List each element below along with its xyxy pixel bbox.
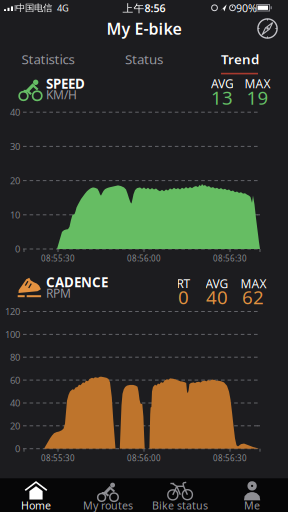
staticText: Status <box>125 50 163 68</box>
staticText: RT <box>176 275 190 291</box>
button[interactable]: Home <box>0 478 72 512</box>
staticText: CADENCE <box>46 273 108 291</box>
staticText: 0 <box>15 442 20 455</box>
staticText: Trend <box>221 50 259 68</box>
staticText: Home <box>21 498 51 512</box>
staticText: My routes <box>83 498 133 512</box>
staticText: 08:56:00 <box>127 453 161 463</box>
staticText: 90% <box>236 1 257 15</box>
button[interactable]: Trend <box>192 49 288 69</box>
staticText: 10 <box>10 209 20 221</box>
staticText: 40 <box>206 285 228 309</box>
staticText: 120 <box>5 305 20 318</box>
staticText: 20 <box>10 174 20 187</box>
staticText: AVG <box>211 75 234 91</box>
staticText: 08:56:30 <box>213 253 247 264</box>
button[interactable]: Bike status <box>144 478 216 512</box>
staticText: 40 <box>10 397 20 409</box>
staticText: Me <box>244 498 260 512</box>
staticText: 30 <box>10 140 20 153</box>
staticText: RPM <box>46 285 71 301</box>
staticText: Bike status <box>152 498 208 512</box>
staticText: Statistics <box>21 50 74 68</box>
staticText: 08:56:30 <box>213 453 247 463</box>
staticText: 20 <box>10 420 20 432</box>
staticText: 60 <box>10 374 20 386</box>
staticText: 13 <box>211 85 233 110</box>
staticText: 100 <box>5 328 20 341</box>
staticText: SPEED <box>46 75 85 92</box>
staticText: My E-bike <box>106 18 181 39</box>
staticText: 0 <box>15 243 20 255</box>
staticText: 中国电信 <box>16 2 52 14</box>
staticText: 08:55:30 <box>41 453 75 463</box>
button[interactable]: Me <box>216 478 288 512</box>
button[interactable]: Compass <box>254 15 280 41</box>
staticText: 0 <box>178 285 189 309</box>
staticText: MAX <box>244 75 270 91</box>
button[interactable]: Status <box>96 49 192 69</box>
button[interactable]: Statistics <box>0 49 96 69</box>
staticText: 08:56:00 <box>127 253 161 264</box>
button[interactable]: My routes <box>72 478 144 512</box>
staticText: MAX <box>240 275 266 291</box>
staticText: AVG <box>205 275 228 291</box>
staticText: 4G <box>57 2 69 14</box>
staticText: 19 <box>246 85 268 110</box>
staticText: 62 <box>242 285 264 309</box>
staticText: 40 <box>10 106 20 118</box>
staticText: 08:55:30 <box>41 253 75 264</box>
staticText: 80 <box>10 351 20 363</box>
staticText: KM/H <box>46 86 77 102</box>
staticText: 上午8:56 <box>122 1 165 15</box>
